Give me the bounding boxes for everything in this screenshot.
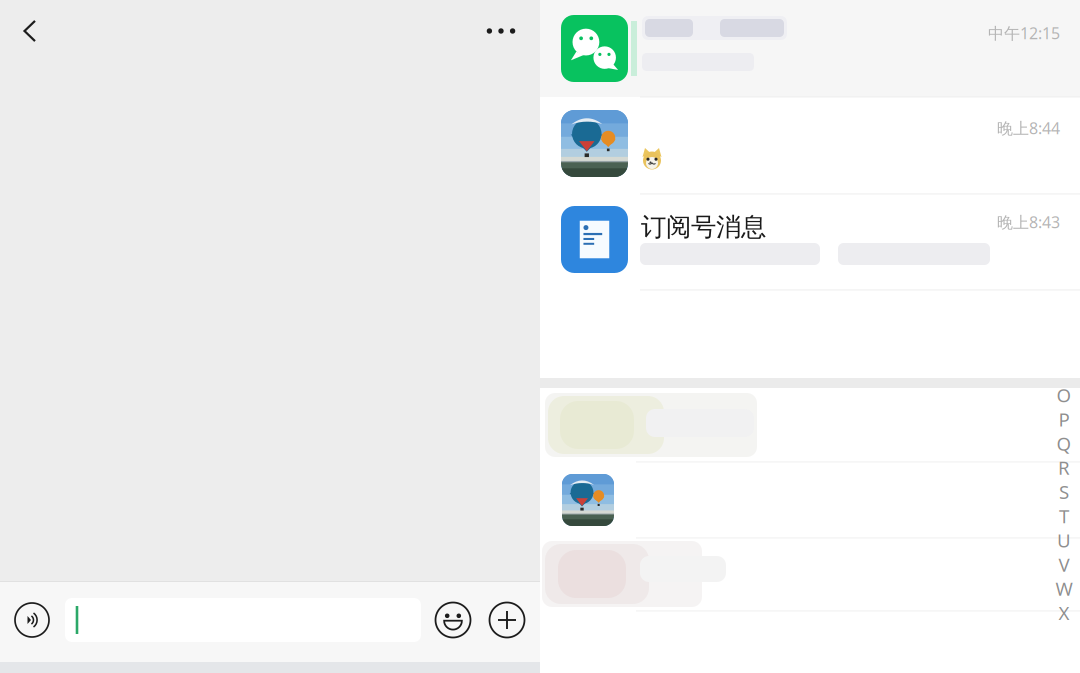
staticText: X [1058, 600, 1069, 625]
staticText: 晚上8:43 [997, 211, 1060, 233]
button[interactable]: 中午12:15 [540, 0, 1080, 97]
button[interactable]: More [476, 9, 526, 53]
staticText: V [1058, 552, 1069, 577]
button[interactable]: Hold to talk [10, 598, 54, 642]
button[interactable]: 晚上8:44 [540, 97, 1080, 194]
button[interactable] [540, 462, 1080, 538]
staticText: P [1058, 407, 1069, 432]
staticText: 中午12:15 [988, 22, 1060, 44]
staticText: S [1059, 479, 1069, 504]
button[interactable] [540, 388, 1080, 462]
staticText: 订阅号消息 [641, 211, 766, 242]
button[interactable] [540, 538, 1080, 611]
staticText: U [1057, 528, 1071, 553]
staticText: 晚上8:44 [997, 117, 1060, 139]
button[interactable]: 订阅号消息 [540, 194, 1080, 290]
button[interactable]: More actions [485, 598, 529, 642]
staticText: W [1055, 576, 1072, 601]
staticText: O [1056, 383, 1071, 407]
staticText: Q [1056, 431, 1071, 456]
button[interactable]: Back [7, 8, 53, 54]
staticText: R [1058, 455, 1070, 480]
button[interactable]: Emoji [431, 598, 475, 642]
staticText: T [1059, 504, 1069, 528]
